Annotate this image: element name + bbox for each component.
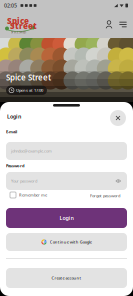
- staticText: Forgot password: [90, 193, 120, 198]
- staticText: Spice: [7, 15, 29, 26]
- button[interactable]: Remember me: [10, 192, 47, 198]
- staticText: Continue with Google: [50, 239, 92, 245]
- staticText: johndoe@example.com: [11, 148, 52, 154]
- staticText: Your password: [11, 178, 37, 184]
- staticText: Street: [10, 20, 37, 31]
- button[interactable]: Forgot password: [88, 191, 122, 200]
- button[interactable]: Create account: [6, 268, 127, 288]
- staticText: Password: [6, 163, 25, 168]
- staticText: 02:05: [4, 2, 17, 9]
- staticText: Create account: [51, 275, 81, 281]
- staticText: Login: [7, 113, 21, 120]
- staticText: SPICE STREET: [11, 30, 26, 34]
- button[interactable]: Continue with Google: [6, 233, 127, 251]
- button[interactable]: Close: [110, 110, 126, 126]
- button[interactable]: Login: [6, 208, 127, 228]
- staticText: Spice Street: [6, 72, 51, 83]
- staticText: E-mail: [6, 129, 17, 134]
- staticText: Opens at 17:00: [16, 88, 43, 93]
- staticText: Login: [59, 214, 73, 222]
- staticText: Remember me: [19, 192, 47, 198]
- button[interactable]: Account: [102, 15, 116, 33]
- button[interactable]: Menu: [116, 15, 130, 33]
